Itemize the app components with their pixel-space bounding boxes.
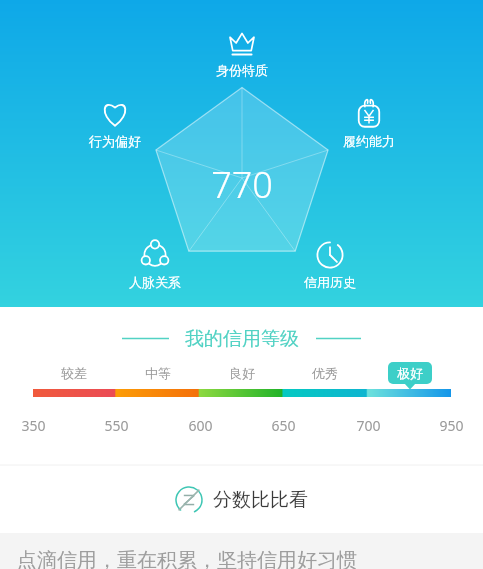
staticText: 履约能力	[343, 133, 395, 149]
button[interactable]: 分数比比看	[0, 466, 483, 533]
staticText: 行为偏好	[89, 133, 141, 149]
staticText: 550	[104, 416, 129, 435]
staticText: 点滴信用，重在积累，坚持信用好习惯	[17, 548, 357, 569]
staticText: 较差	[61, 365, 87, 381]
staticText: 人脉关系	[129, 274, 181, 290]
button[interactable]: Credit history	[285, 233, 375, 296]
staticText: 350	[21, 416, 46, 435]
staticText: 600	[188, 416, 213, 435]
staticText: 优秀	[312, 365, 338, 381]
button[interactable]: Social network	[110, 233, 200, 296]
staticText: 950	[439, 416, 464, 435]
button[interactable]: Behaviour preference	[70, 92, 160, 155]
staticText: 分数比比看	[213, 488, 308, 512]
staticText: 极好	[397, 365, 423, 381]
staticText: 770	[211, 160, 273, 204]
staticText: 身份特质	[216, 62, 268, 78]
staticText: 650	[271, 416, 296, 435]
staticText: 中等	[145, 365, 171, 381]
staticText: 良好	[229, 365, 255, 381]
staticText: 700	[356, 416, 381, 435]
staticText: 我的信用等级	[185, 327, 299, 351]
button[interactable]: 极好	[388, 362, 432, 384]
button[interactable]: Identity traits	[197, 22, 287, 84]
staticText: 信用历史	[304, 274, 356, 290]
button[interactable]: Repayment ability	[324, 91, 414, 155]
